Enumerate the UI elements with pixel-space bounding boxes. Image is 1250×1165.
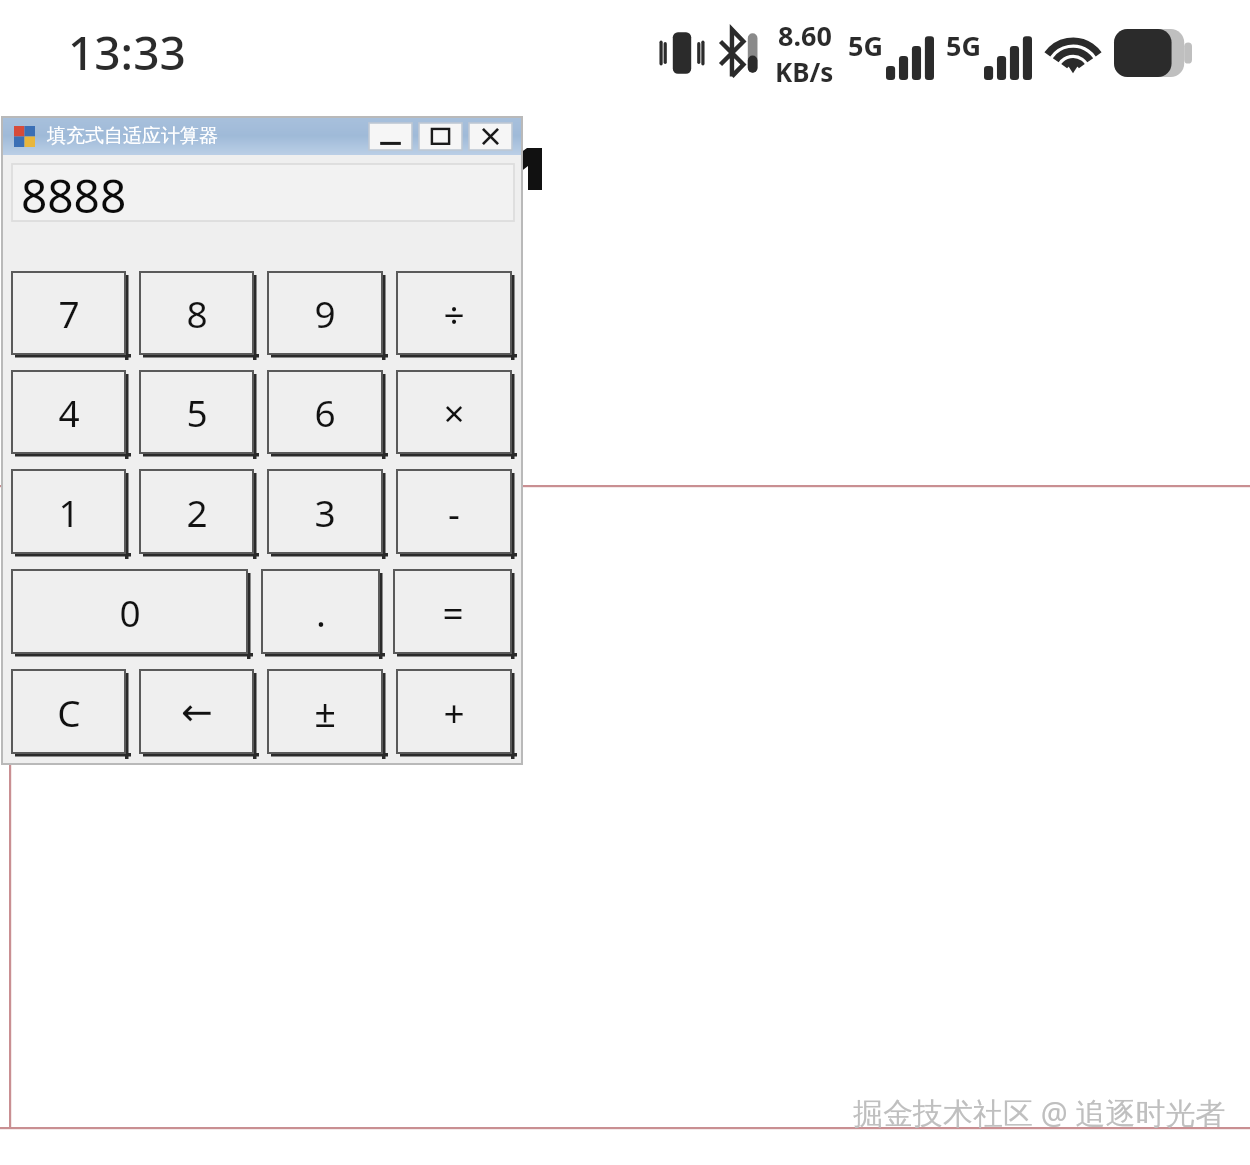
button[interactable]: min [369, 123, 412, 150]
staticText: - [448, 487, 460, 537]
button[interactable]: × [397, 371, 514, 456]
button[interactable]: . [262, 570, 382, 656]
staticText: 9 [314, 288, 336, 338]
button[interactable]: ← [140, 670, 256, 756]
staticText: 5G [848, 27, 883, 64]
staticText: 13:33 [68, 21, 186, 84]
button[interactable]: - [397, 470, 514, 556]
staticText: 1 [58, 487, 80, 537]
button[interactable]: 9 [268, 272, 385, 357]
staticText: × [443, 387, 465, 437]
staticText: 5 [186, 387, 208, 437]
staticText: 填充式自适应计算器 [47, 124, 218, 148]
staticText: 6 [314, 387, 336, 437]
staticText: + [443, 687, 465, 737]
button[interactable]: 6 [268, 371, 385, 456]
button[interactable]: + [397, 670, 514, 756]
staticText: ← [181, 690, 213, 734]
button[interactable]: ÷ [397, 272, 514, 357]
button[interactable]: 7 [12, 272, 128, 357]
staticText: 8.60 [778, 17, 832, 54]
button[interactable]: 8 [140, 272, 256, 357]
button[interactable]: C [12, 670, 128, 756]
staticText: ÷ [443, 288, 465, 338]
staticText: . [316, 587, 326, 637]
button[interactable]: max [419, 123, 462, 150]
staticText: 7 [58, 288, 80, 338]
staticText: 4 [58, 387, 80, 437]
staticText: 2 [186, 487, 208, 537]
button[interactable]: 4 [12, 371, 128, 456]
button[interactable]: close [469, 123, 512, 150]
staticText: 3 [314, 487, 336, 537]
button[interactable]: 2 [140, 470, 256, 556]
button[interactable]: 5 [140, 371, 256, 456]
staticText: = [442, 587, 464, 637]
staticText: 8888 [21, 164, 127, 219]
staticText: 5G [946, 27, 981, 64]
staticText: 8 [186, 288, 208, 338]
button[interactable]: 3 [268, 470, 385, 556]
staticText: ± [314, 686, 336, 738]
staticText: C [57, 687, 81, 737]
button[interactable]: 8888 [12, 164, 514, 221]
staticText: 0 [119, 587, 141, 637]
button[interactable]: ± [268, 670, 385, 756]
button[interactable]: 0 [12, 570, 250, 656]
button[interactable]: 1 [12, 470, 128, 556]
staticText: KB/s [775, 54, 834, 89]
button[interactable]: = [394, 570, 514, 656]
staticText: 掘金技术社区 @ 追逐时光者 [853, 1092, 1226, 1133]
